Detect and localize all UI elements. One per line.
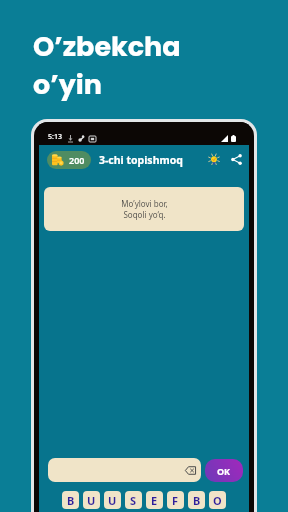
staticText: OK [217, 465, 231, 477]
staticText: B [193, 493, 201, 508]
staticText: Soqoli yo‘q. [123, 209, 166, 220]
button[interactable]: Hint [205, 151, 222, 168]
staticText: F [172, 493, 179, 508]
button[interactable]: B [188, 491, 205, 509]
button[interactable]: E [146, 491, 163, 509]
button[interactable]: Mo’ylovi bor, [44, 187, 244, 231]
staticText: O’zbekcha [33, 28, 181, 66]
staticText: U [108, 493, 117, 508]
button[interactable]: U [104, 491, 121, 509]
button[interactable] [48, 458, 201, 482]
staticText: 5:13 [48, 132, 62, 142]
button[interactable]: O [209, 491, 226, 509]
staticText: U [87, 493, 96, 508]
button[interactable]: 200 [47, 151, 91, 169]
staticText: o’yin [33, 66, 102, 104]
staticText: Mo’ylovi bor, [121, 198, 168, 209]
staticText: 200 [69, 154, 85, 166]
button[interactable]: S [125, 491, 142, 509]
button[interactable]: Share [228, 151, 245, 168]
button[interactable]: OK [205, 459, 243, 482]
staticText: S [130, 493, 137, 508]
button[interactable]: F [167, 491, 184, 509]
staticText: E [151, 493, 158, 508]
button[interactable]: B [62, 491, 79, 509]
button[interactable]: U [83, 491, 100, 509]
staticText: 3-chi topishmoq [99, 153, 183, 167]
staticText: B [67, 493, 75, 508]
staticText: O [213, 493, 222, 508]
